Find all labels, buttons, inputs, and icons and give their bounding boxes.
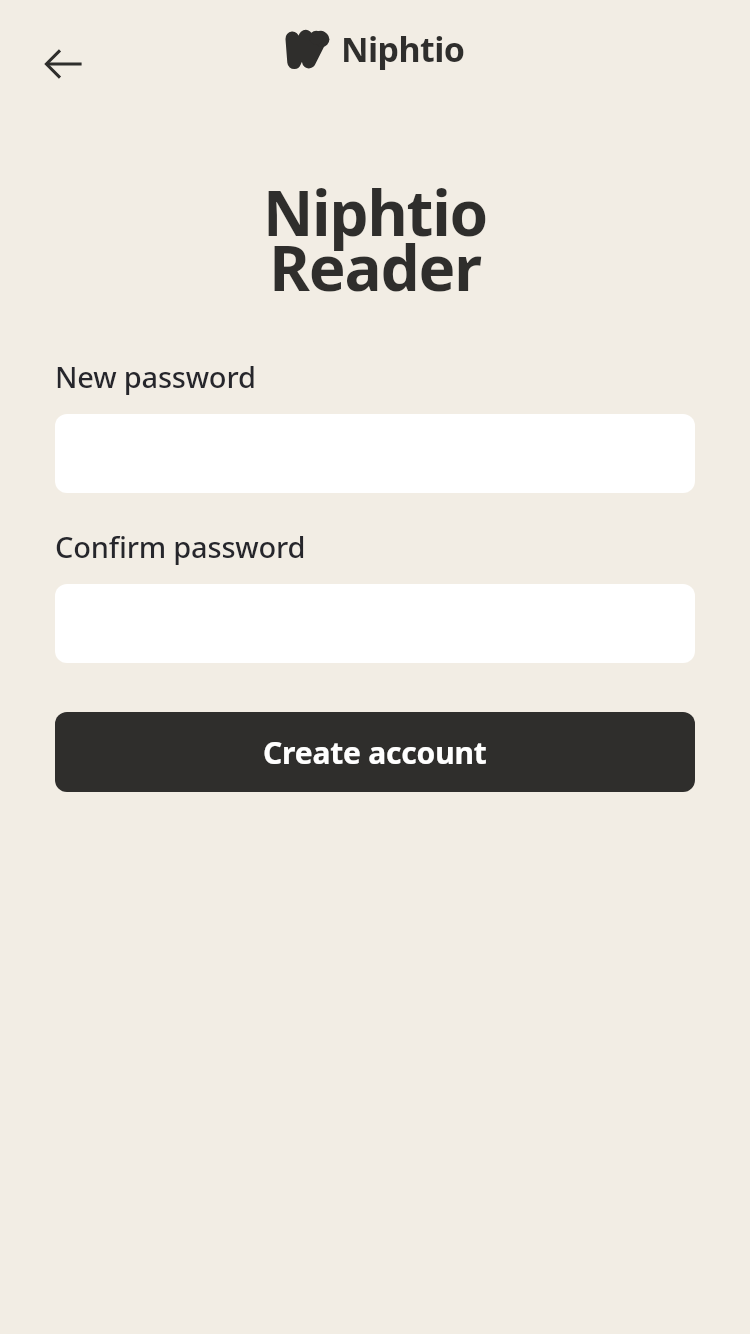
button[interactable]: Create account	[55, 712, 695, 792]
staticText: Niphtio Reader	[55, 170, 695, 309]
staticText: Confirm password	[55, 527, 306, 566]
staticText: Create account	[263, 732, 487, 773]
staticText: New password	[55, 357, 256, 396]
button[interactable]: Back	[32, 32, 96, 96]
staticText: Niphtio	[341, 26, 465, 72]
